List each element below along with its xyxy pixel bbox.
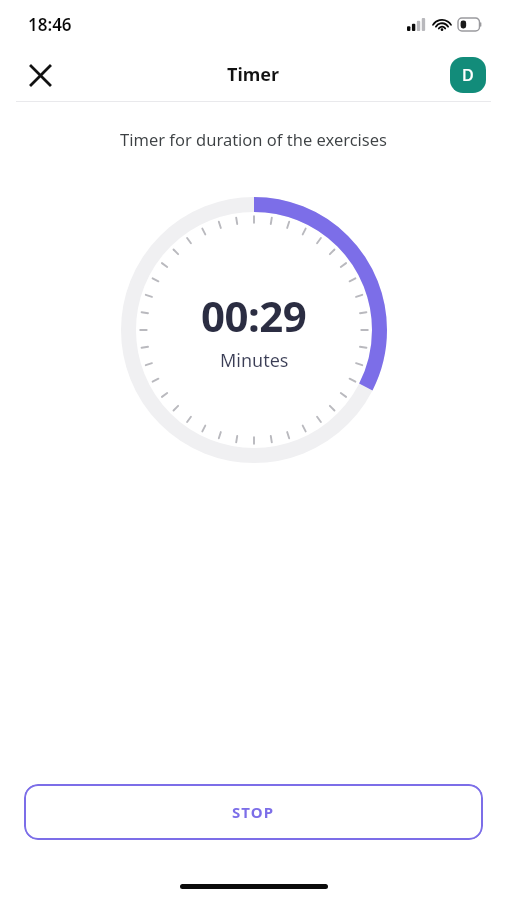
staticText: 18:46 bbox=[28, 13, 72, 36]
staticText: Timer for duration of the exercises bbox=[20, 128, 487, 150]
button[interactable]: STOP bbox=[24, 784, 483, 840]
staticText: STOP bbox=[232, 802, 275, 822]
staticText: D bbox=[462, 64, 474, 86]
button[interactable]: Profile bbox=[450, 57, 486, 93]
button[interactable]: Close bbox=[14, 49, 66, 101]
staticText: Timer bbox=[227, 62, 280, 87]
staticText: Minutes bbox=[220, 348, 289, 373]
staticText: 00:29 bbox=[201, 287, 307, 344]
